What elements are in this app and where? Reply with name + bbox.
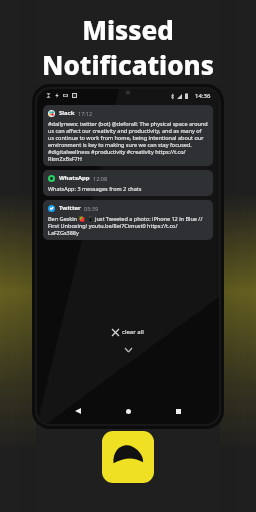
staticText: WhatsApp: 3 messages from 2 chats <box>48 185 142 192</box>
button[interactable]: App icon <box>102 431 154 483</box>
staticText: clear all <box>122 328 144 336</box>
button[interactable]: clear all <box>102 325 154 339</box>
staticText: Twitter <box>59 204 81 212</box>
staticText: Notifications <box>42 47 214 82</box>
staticText: 17:12 <box>78 110 93 117</box>
staticText: WhatsApp <box>59 174 90 182</box>
staticText: 05:39 <box>84 205 99 212</box>
staticText: 14:36 <box>195 92 211 100</box>
button[interactable]: Recents <box>169 402 187 420</box>
button[interactable]: Back <box>69 402 87 420</box>
staticText: Ben Geskin 🍓 📱 just Tweeted a photo: iPh… <box>48 215 208 236</box>
button[interactable]: Home <box>119 402 137 420</box>
staticText: #dailynews: twitter (bot) @deforall: The… <box>48 120 208 162</box>
staticText: Slack <box>59 109 75 117</box>
staticText: Missed <box>82 12 174 47</box>
button[interactable]: Slack <box>43 105 213 166</box>
staticText: 12:08 <box>93 175 108 182</box>
button[interactable]: Expand <box>122 344 134 356</box>
button[interactable]: Twitter <box>43 200 213 240</box>
button[interactable]: WhatsApp <box>43 170 213 196</box>
